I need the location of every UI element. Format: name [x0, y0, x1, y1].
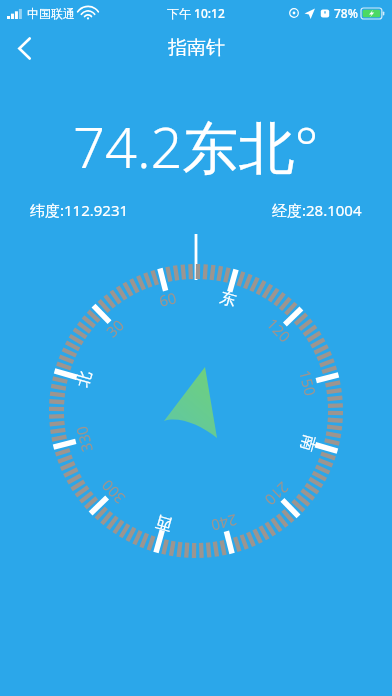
staticText: 北 — [72, 369, 96, 389]
staticText: 中国联通 — [27, 6, 75, 21]
staticText: 150 — [295, 368, 321, 398]
button[interactable]: Back — [0, 26, 48, 70]
staticText: 240 — [209, 510, 239, 536]
staticText: 330 — [71, 424, 97, 454]
staticText: 120 — [263, 314, 295, 346]
staticText: 210 — [261, 478, 293, 510]
staticText: 下午 10:12 — [167, 5, 225, 21]
staticText: 经度:28.1004 — [272, 200, 362, 220]
staticText: 纬度:112.9231 — [30, 200, 129, 220]
staticText: 西 — [154, 511, 174, 535]
staticText: 74.2东北° — [73, 108, 319, 184]
staticText: 300 — [97, 476, 129, 508]
staticText: 60 — [157, 287, 179, 311]
staticText: 南 — [296, 433, 320, 453]
staticText: 78% — [334, 5, 358, 21]
staticText: 30 — [102, 315, 128, 341]
staticText: 东 — [218, 287, 238, 311]
staticText: 指南针 — [168, 36, 225, 60]
